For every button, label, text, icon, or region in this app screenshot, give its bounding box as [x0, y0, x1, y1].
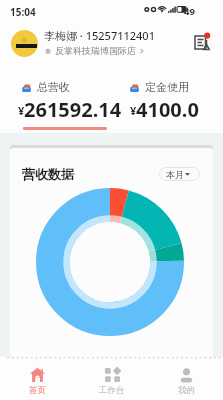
button[interactable]: 总营收 — [14, 70, 129, 130]
button[interactable]: 定金使用 — [122, 70, 223, 130]
button[interactable]: 反掌科技瑞博国际店 — [44, 45, 145, 56]
staticText: 我的 — [178, 385, 195, 396]
button[interactable]: Avatar — [11, 30, 38, 57]
staticText: 261592.14 — [24, 96, 122, 123]
staticText: 首页 — [29, 385, 46, 396]
staticText: 总营收 — [37, 80, 70, 94]
button[interactable]: 工作台 — [75, 357, 149, 400]
staticText: 定金使用 — [145, 80, 189, 94]
staticText: 4100.0 — [136, 96, 199, 123]
staticText: ¥ — [18, 103, 25, 118]
button[interactable]: 我的 — [149, 357, 223, 400]
button[interactable]: Orders — [193, 32, 211, 50]
staticText: ¥ — [130, 103, 137, 118]
staticText: 49 — [184, 5, 195, 18]
staticText: 本月 — [166, 169, 184, 180]
staticText: 李梅娜 · 15257112401 — [44, 28, 155, 43]
button[interactable]: 本月 — [159, 167, 200, 181]
staticText: 反掌科技瑞博国际店 — [55, 45, 136, 56]
button[interactable]: 首页 — [0, 357, 75, 400]
staticText: 营收数据 — [22, 166, 74, 182]
staticText: 工作台 — [99, 385, 125, 396]
staticText: 15:04 — [10, 5, 36, 19]
